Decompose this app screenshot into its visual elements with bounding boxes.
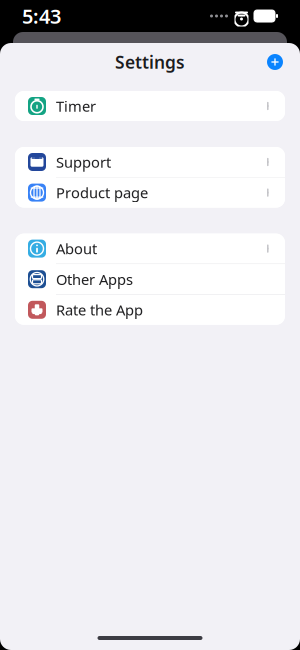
button[interactable]: Support	[15, 147, 285, 177]
button[interactable]: Close	[260, 47, 290, 77]
staticText: 5:43	[22, 3, 61, 29]
staticText: Support	[56, 152, 111, 172]
staticText: Other Apps	[56, 269, 133, 289]
staticText: Rate the App	[56, 300, 143, 320]
button[interactable]: Timer	[15, 91, 285, 121]
button[interactable]: Product page	[15, 178, 285, 208]
button[interactable]: About	[15, 234, 285, 264]
button[interactable]: Other Apps	[15, 264, 285, 294]
staticText: Timer	[56, 96, 96, 116]
button[interactable]: Rate the App	[15, 295, 285, 325]
staticText: About	[56, 239, 97, 258]
staticText: Settings	[115, 50, 185, 73]
staticText: Product page	[56, 183, 148, 202]
